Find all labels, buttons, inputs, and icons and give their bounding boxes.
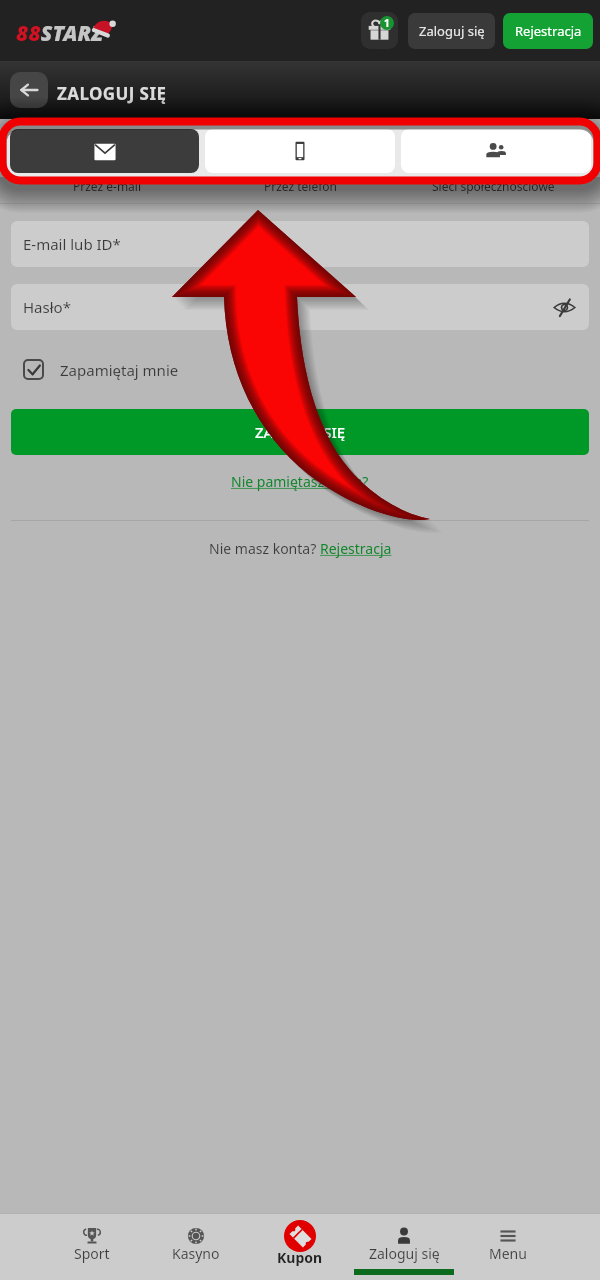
staticText: Nie masz konta? [209, 539, 320, 558]
staticText: Menu [489, 1244, 527, 1263]
button[interactable]: Kasyno [144, 1213, 248, 1280]
button[interactable]: Bonuses [361, 12, 398, 49]
staticText: ZALOGUJ SIĘ [57, 82, 167, 105]
staticText: Kupon [277, 1248, 323, 1267]
button[interactable]: Show password [547, 290, 581, 324]
staticText: Zaloguj się [369, 1244, 440, 1263]
button[interactable]: Back [10, 72, 48, 108]
staticText: Rejestracja [515, 22, 582, 40]
staticText: Hasło* [23, 297, 71, 317]
button[interactable]: Zaloguj się [352, 1213, 456, 1280]
staticText: Zapamiętaj mnie [60, 360, 179, 380]
button[interactable]: Nie pamiętasz hasła? [231, 472, 369, 491]
staticText: E-mail lub ID* [23, 234, 121, 254]
button[interactable]: Menu [456, 1213, 560, 1280]
button[interactable]: Hasło* [11, 284, 589, 330]
button[interactable]: Zaloguj się [408, 13, 495, 49]
button[interactable]: Kupon [248, 1213, 352, 1280]
button[interactable]: Sport [40, 1213, 144, 1280]
button[interactable]: Zapamiętaj mnie [11, 352, 179, 387]
staticText: 1 [384, 16, 390, 30]
staticText: Sieci społecznościowe [432, 178, 555, 194]
staticText: Przez e-mail [73, 178, 142, 194]
staticText: Sport [74, 1244, 110, 1263]
button[interactable]: ZALOGUJ SIĘ [11, 409, 589, 455]
staticText: Przez telefon [264, 178, 338, 194]
button[interactable]: Rejestracja [320, 539, 392, 558]
button[interactable]: Log in by phone [205, 129, 395, 173]
staticText: ZALOGUJ SIĘ [255, 422, 346, 442]
button[interactable]: Rejestracja [503, 13, 593, 49]
button[interactable]: Log in by e-mail [10, 129, 199, 173]
button[interactable]: Log in with social networks [401, 129, 591, 173]
staticText: 88STARZ [16, 19, 103, 48]
staticText: Zaloguj się [419, 22, 485, 40]
staticText: Kasyno [172, 1244, 220, 1263]
button[interactable]: E-mail lub ID* [11, 221, 589, 267]
